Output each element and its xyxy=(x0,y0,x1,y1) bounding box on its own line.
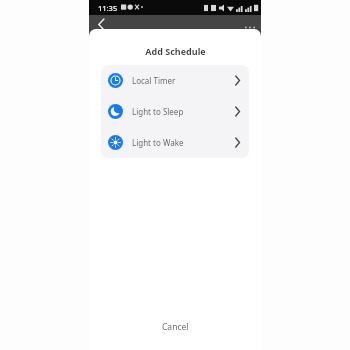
button[interactable]: Local Timer xyxy=(101,65,249,96)
button[interactable]: Back xyxy=(93,16,109,32)
staticText: 11:35 xyxy=(98,3,118,13)
button[interactable]: Cancel xyxy=(89,304,261,350)
staticText: Light to Sleep xyxy=(132,106,235,117)
button[interactable]: Light to Sleep xyxy=(101,96,249,127)
staticText: Light to Wake xyxy=(132,137,235,148)
button[interactable]: More options xyxy=(242,22,258,32)
staticText: Local Timer xyxy=(132,75,235,86)
staticText: Cancel xyxy=(162,321,189,333)
staticText: Add Schedule xyxy=(145,45,206,57)
button[interactable]: Light to Wake xyxy=(101,127,249,158)
